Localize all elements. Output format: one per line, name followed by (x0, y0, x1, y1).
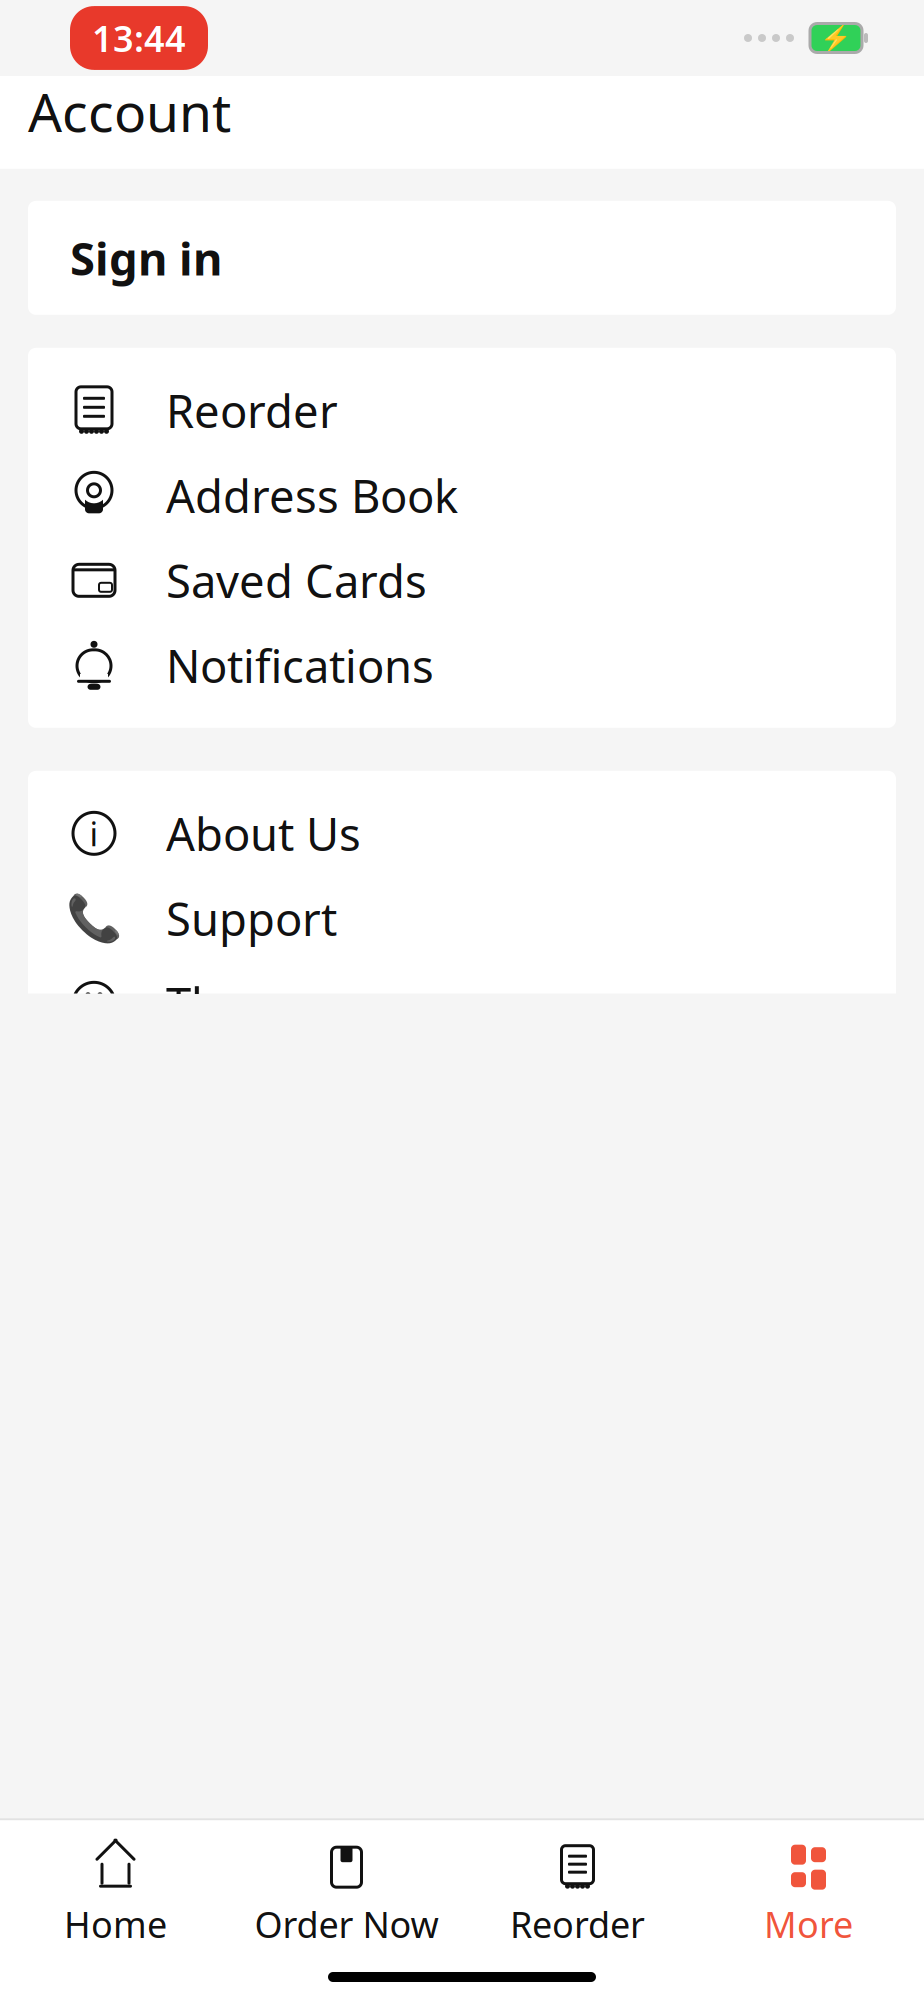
staticText: Account (28, 76, 231, 147)
staticText: Address Book (166, 465, 458, 525)
staticText: Reorder (510, 1900, 645, 1948)
button[interactable]: Reorder (28, 368, 896, 453)
button[interactable]: 📞 (28, 876, 896, 961)
staticText: Reorder (166, 380, 338, 440)
staticText: Support (166, 888, 337, 948)
staticText: Notifications (166, 635, 434, 695)
button[interactable]: Address Book (28, 453, 896, 538)
button[interactable]: Saved Cards (28, 538, 896, 623)
button[interactable]: Home (0, 1838, 231, 1954)
staticText: More (764, 1900, 853, 1948)
staticText: Sign in (70, 228, 222, 288)
staticText: i (89, 811, 98, 855)
staticText: About Us (166, 803, 361, 863)
button[interactable]: Sign in (28, 201, 896, 315)
staticText: Home (64, 1900, 167, 1948)
button[interactable]: i (28, 791, 896, 876)
button[interactable]: Notifications (28, 623, 896, 708)
staticText: Saved Cards (166, 550, 427, 610)
button[interactable]: Order Now (231, 1838, 462, 1954)
staticText: 13:44 (92, 14, 186, 62)
button[interactable]: Reorder (462, 1838, 693, 1954)
button[interactable]: More (693, 1838, 924, 1954)
staticText: Order Now (254, 1900, 438, 1948)
staticText: Theme (166, 973, 313, 1033)
staticText: 📞 (66, 892, 122, 944)
staticText: ⚡ (820, 23, 852, 52)
button[interactable]: Theme (28, 961, 896, 1046)
